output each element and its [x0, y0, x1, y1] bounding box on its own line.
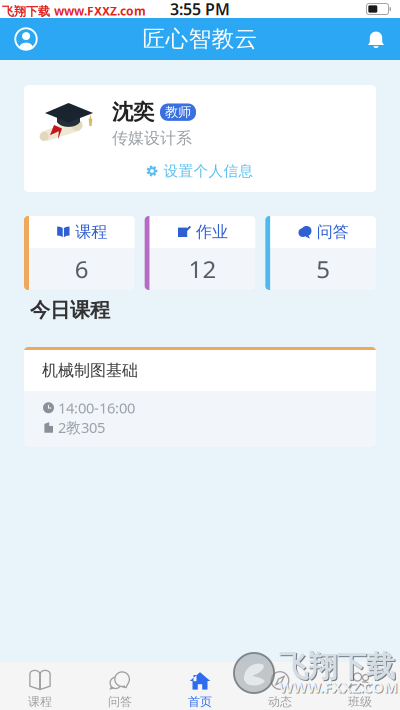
button[interactable]: 首页	[160, 662, 240, 710]
button[interactable]: 沈奕	[24, 85, 376, 192]
staticText: 问答	[108, 694, 132, 709]
staticText: 传媒设计系	[112, 128, 192, 148]
staticText: 14:00-16:00	[58, 398, 135, 417]
staticText: 匠心智教云	[142, 25, 257, 53]
button[interactable]: 机械制图基础	[24, 347, 376, 447]
staticText: 3:55 PM	[170, 0, 230, 20]
staticText: 首页	[188, 694, 212, 709]
staticText: 沈奕	[112, 99, 154, 125]
button[interactable]: 问答	[265, 216, 376, 290]
staticText: 飞翔下载 www.FXXZ.com	[2, 3, 146, 19]
button[interactable]: 课程	[24, 216, 135, 290]
staticText: 12	[188, 253, 216, 285]
staticText: WWW.FXXZ.COM	[280, 678, 399, 698]
staticText: 飞翔下载	[280, 649, 396, 685]
button[interactable]: 问答	[80, 662, 160, 710]
staticText: 飞翔下载	[279, 648, 395, 684]
staticText: 机械制图基础	[42, 361, 138, 380]
staticText: 6	[75, 253, 89, 285]
staticText: 动态	[268, 694, 292, 709]
staticText: WWW.FXXZ.COM	[279, 677, 398, 697]
staticText: 设置个人信息	[163, 162, 253, 180]
staticText: 2教305	[58, 417, 105, 437]
button[interactable]: 课程	[0, 662, 80, 710]
staticText: 班级	[348, 694, 372, 709]
staticText: 课程	[75, 222, 107, 242]
staticText: 作业	[196, 222, 228, 242]
staticText: 今日课程	[30, 298, 110, 322]
staticText: 课程	[28, 694, 52, 709]
button[interactable]: 通知	[366, 29, 400, 49]
button[interactable]: 作业	[145, 216, 255, 290]
button[interactable]: 动态	[240, 662, 320, 710]
button[interactable]: 个人中心	[0, 27, 38, 51]
button[interactable]: 班级	[320, 662, 400, 710]
staticText: 教师	[165, 104, 191, 120]
staticText: 5	[316, 253, 330, 285]
staticText: 问答	[317, 222, 349, 242]
